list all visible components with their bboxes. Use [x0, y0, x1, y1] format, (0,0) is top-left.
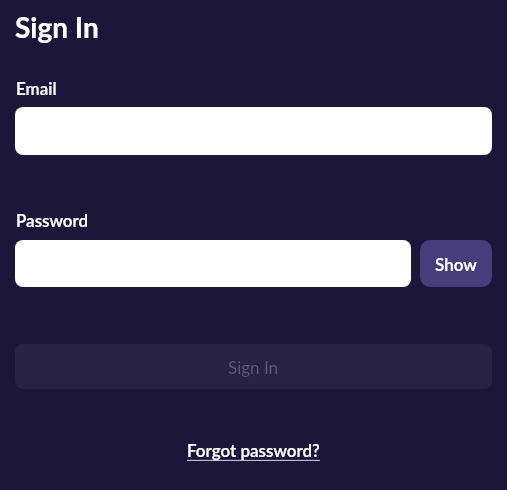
button[interactable]: Forgot password?	[187, 440, 320, 460]
button[interactable]: Sign In	[15, 344, 492, 389]
staticText: Sign In	[15, 10, 99, 44]
button[interactable]: Show	[420, 240, 492, 287]
staticText: Email	[16, 78, 57, 98]
staticText: Sign In	[228, 357, 279, 377]
button[interactable]	[15, 240, 411, 287]
button[interactable]	[15, 107, 492, 155]
staticText: Password	[16, 210, 89, 230]
staticText: Show	[435, 254, 477, 274]
